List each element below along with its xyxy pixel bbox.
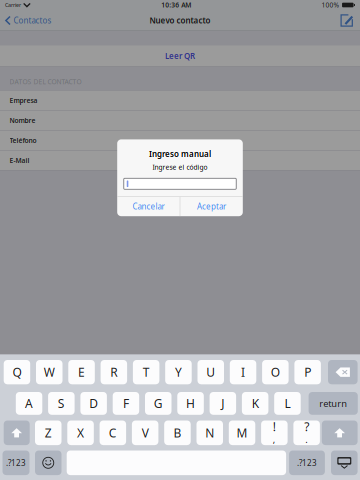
button[interactable]: Q — [4, 360, 30, 384]
button[interactable]: U — [197, 360, 224, 384]
staticText: I — [241, 364, 245, 380]
staticText: 100% — [321, 1, 339, 9]
button[interactable]: ! — [261, 420, 288, 445]
staticText: Q — [12, 364, 21, 380]
button[interactable]: Delete — [328, 360, 358, 384]
staticText: DATOS DEL CONTACTO — [9, 77, 81, 86]
staticText: ! — [273, 419, 276, 434]
button[interactable]: Nombre — [0, 111, 360, 130]
staticText: E — [78, 364, 85, 380]
staticText: Empresa — [9, 96, 37, 105]
button[interactable]: return — [309, 392, 358, 415]
staticText: W — [44, 364, 55, 380]
staticText: . — [305, 433, 308, 445]
button[interactable]: A — [16, 392, 42, 415]
staticText: K — [252, 395, 259, 411]
staticText: Nombre — [9, 116, 35, 125]
staticText: M — [236, 425, 247, 441]
button[interactable]: M — [229, 420, 255, 445]
button[interactable]: Shift — [4, 420, 30, 445]
button[interactable]: T — [133, 360, 159, 384]
button[interactable]: Y — [165, 360, 192, 384]
button[interactable]: V — [132, 420, 158, 445]
button[interactable]: D — [80, 392, 107, 415]
staticText: .?123 — [297, 457, 317, 468]
button[interactable]: Empresa — [0, 91, 360, 110]
button[interactable]: Teléfono — [0, 131, 360, 150]
button[interactable]: Shift — [322, 420, 358, 445]
button[interactable]: F — [113, 392, 139, 415]
button[interactable]: .?123 — [289, 450, 325, 475]
staticText: Leer QR — [165, 50, 195, 61]
staticText: E-Mail — [9, 156, 29, 165]
staticText: B — [173, 425, 181, 441]
button[interactable]: .?123 — [2, 450, 29, 475]
button[interactable]: S — [48, 392, 75, 415]
button[interactable]: C — [100, 420, 126, 445]
staticText: R — [110, 364, 117, 380]
staticText: Nuevo contacto — [149, 15, 210, 26]
button[interactable]: Hide keyboard — [331, 450, 358, 475]
button[interactable]: R — [101, 360, 127, 384]
staticText: .?123 — [6, 457, 26, 468]
button[interactable]: Contactos — [0, 10, 56, 31]
staticText: G — [154, 395, 163, 411]
staticText: Y — [175, 364, 182, 380]
button[interactable]: W — [36, 360, 62, 384]
button[interactable]: Leer QR — [0, 45, 360, 66]
staticText: Ingreso manual — [149, 148, 211, 159]
staticText: A — [25, 395, 33, 411]
button[interactable]: J — [210, 392, 236, 415]
staticText: C — [109, 425, 117, 441]
button[interactable]: Z — [35, 420, 61, 445]
button[interactable]: I — [230, 360, 256, 384]
button[interactable]: Compose — [334, 10, 360, 31]
button[interactable]: L — [274, 392, 301, 415]
button[interactable]: E — [68, 360, 95, 384]
button[interactable]: Aceptar — [180, 197, 243, 216]
button[interactable]: H — [177, 392, 204, 415]
staticText: Ingrese el código — [152, 163, 207, 171]
button[interactable]: X — [67, 420, 94, 445]
staticText: , — [273, 433, 276, 445]
staticText: Cancelar — [132, 201, 164, 212]
staticText: Aceptar — [197, 201, 226, 212]
button[interactable]: Emoji — [35, 450, 61, 475]
staticText: H — [186, 395, 195, 411]
button[interactable]: O — [262, 360, 289, 384]
staticText: Contactos — [13, 15, 51, 26]
button[interactable]: B — [164, 420, 191, 445]
staticText: T — [143, 364, 150, 380]
staticText: return — [319, 397, 347, 410]
button[interactable]: Cancelar — [117, 197, 180, 216]
staticText: P — [304, 364, 311, 380]
staticText: O — [271, 364, 280, 380]
staticText: N — [205, 425, 214, 441]
button[interactable]: K — [242, 392, 268, 415]
staticText: Z — [45, 425, 52, 441]
button[interactable]: ? — [293, 420, 320, 445]
button[interactable]: N — [196, 420, 223, 445]
staticText: F — [123, 395, 129, 411]
staticText: S — [58, 395, 65, 411]
staticText: ? — [304, 419, 309, 434]
staticText: Carrier — [5, 1, 21, 9]
staticText: V — [142, 425, 149, 441]
staticText: 10:36 AM — [161, 1, 191, 9]
button[interactable]: E-Mail — [0, 151, 360, 170]
button[interactable]: P — [294, 360, 321, 384]
button[interactable]: G — [145, 392, 171, 415]
staticText: U — [206, 364, 215, 380]
button[interactable]: Space — [67, 450, 286, 475]
staticText: Teléfono — [9, 136, 36, 145]
staticText: X — [77, 425, 84, 441]
staticText: D — [89, 395, 98, 411]
staticText: J — [221, 395, 224, 411]
staticText: L — [284, 395, 290, 411]
